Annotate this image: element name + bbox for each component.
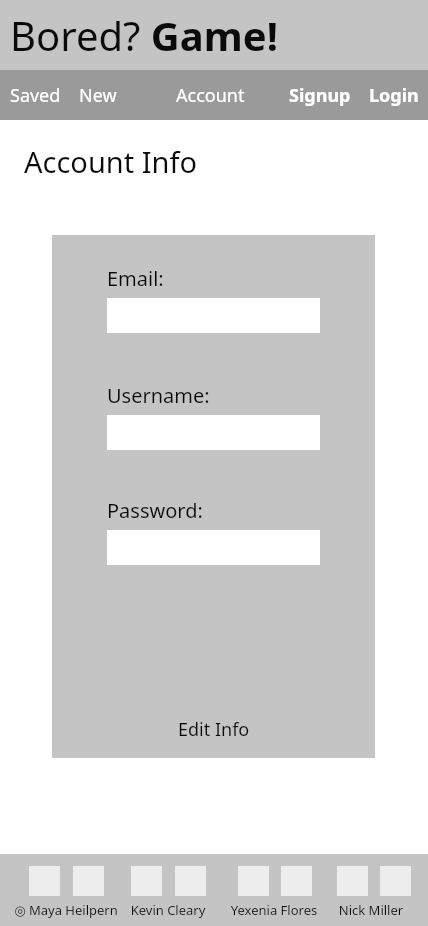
staticText: ◎ Maya Heilpern — [6, 901, 126, 919]
staticText: Nick Miller — [314, 901, 428, 919]
staticText: Email: — [107, 265, 164, 292]
staticText: Account — [176, 83, 245, 108]
button[interactable]: Saved — [10, 83, 61, 108]
button[interactable]: Account — [176, 83, 245, 108]
staticText: Saved — [10, 83, 61, 108]
button[interactable]: Edit Info — [170, 715, 258, 744]
button[interactable]: Nick Miller — [314, 901, 428, 919]
button[interactable]: Login — [369, 83, 419, 108]
staticText: Username: — [107, 382, 210, 409]
staticText: Password: — [107, 497, 203, 524]
button[interactable]: New — [79, 83, 117, 108]
staticText: New — [79, 83, 117, 108]
staticText: Login — [369, 83, 419, 108]
staticText: Edit Info — [178, 717, 250, 742]
button[interactable]: Yexenia Flores — [214, 901, 334, 919]
button[interactable]: ◎ Maya Heilpern — [6, 901, 126, 919]
staticText: Yexenia Flores — [214, 901, 334, 919]
staticText: Signup — [289, 83, 351, 108]
staticText: Bored? Game! — [10, 8, 278, 62]
button[interactable]: Signup — [289, 83, 351, 108]
button[interactable]: Kevin Cleary — [108, 901, 228, 919]
staticText: Kevin Cleary — [108, 901, 228, 919]
staticText: Account Info — [24, 142, 198, 181]
